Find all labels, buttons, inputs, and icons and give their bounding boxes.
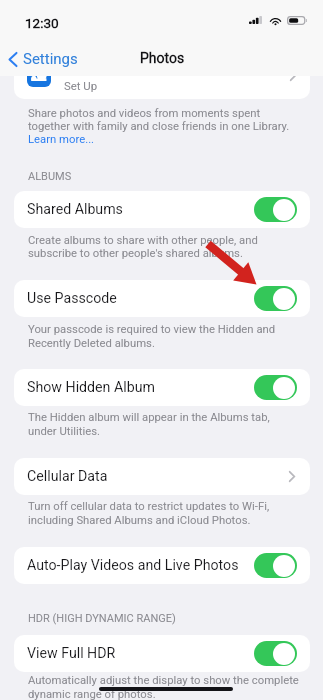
button[interactable]: Toggle: [254, 286, 297, 311]
staticText: Auto-Play Videos and Live Photos: [27, 557, 239, 574]
button[interactable]: Auto-Play Videos and Live Photos: [14, 547, 310, 584]
staticText: together with family and close friends i…: [28, 120, 290, 133]
staticText: Shared Albums: [27, 201, 123, 218]
other: Cellular signal: [249, 16, 262, 24]
staticText: Your passcode is required to view the Hi…: [28, 323, 276, 336]
staticText: View Full HDR: [27, 645, 116, 662]
other: Wi-Fi: [269, 16, 282, 25]
staticText: including Shared Albums and iCloud Photo…: [28, 514, 251, 527]
button[interactable]: Shared Albums: [14, 191, 310, 228]
staticText: Recently Deleted albums.: [28, 337, 155, 350]
staticText: HDR (HIGH DYNAMIC RANGE): [28, 612, 176, 625]
staticText: Settings: [23, 50, 78, 68]
button[interactable]: Set Up: [14, 62, 310, 99]
button[interactable]: Toggle: [254, 641, 297, 666]
button[interactable]: Settings: [4, 48, 84, 70]
staticText: Use Passcode: [27, 290, 117, 307]
staticText: dynamic range of photos.: [28, 688, 156, 700]
staticText: Show Hidden Album: [27, 379, 155, 396]
staticText: Photos: [140, 50, 185, 66]
button[interactable]: Cellular Data: [14, 458, 310, 495]
button[interactable]: Learn more...: [28, 133, 95, 146]
button[interactable]: Show Hidden Album: [14, 369, 310, 406]
staticText: subscribe to other people's shared album…: [28, 247, 243, 260]
staticText: Set Up: [64, 79, 98, 92]
staticText: Cellular Data: [27, 468, 108, 485]
button[interactable]: View Full HDR: [14, 635, 310, 672]
button[interactable]: Use Passcode: [14, 280, 310, 317]
other: Battery: [287, 16, 307, 25]
staticText: 12:30: [25, 15, 59, 31]
staticText: under Utilities.: [28, 425, 100, 438]
staticText: Create albums to share with other people…: [28, 234, 258, 247]
button[interactable]: Toggle: [254, 197, 297, 222]
staticText: The Hidden album will appear in the Albu…: [28, 411, 270, 424]
staticText: Automatically adjust the display to show…: [28, 674, 299, 687]
staticText: Turn off cellular data to restrict updat…: [28, 500, 270, 513]
staticText: Share photos and videos from moments spe…: [28, 107, 261, 120]
staticText: ALBUMS: [28, 170, 72, 183]
button[interactable]: Toggle: [254, 375, 297, 400]
button[interactable]: Toggle: [254, 553, 297, 578]
